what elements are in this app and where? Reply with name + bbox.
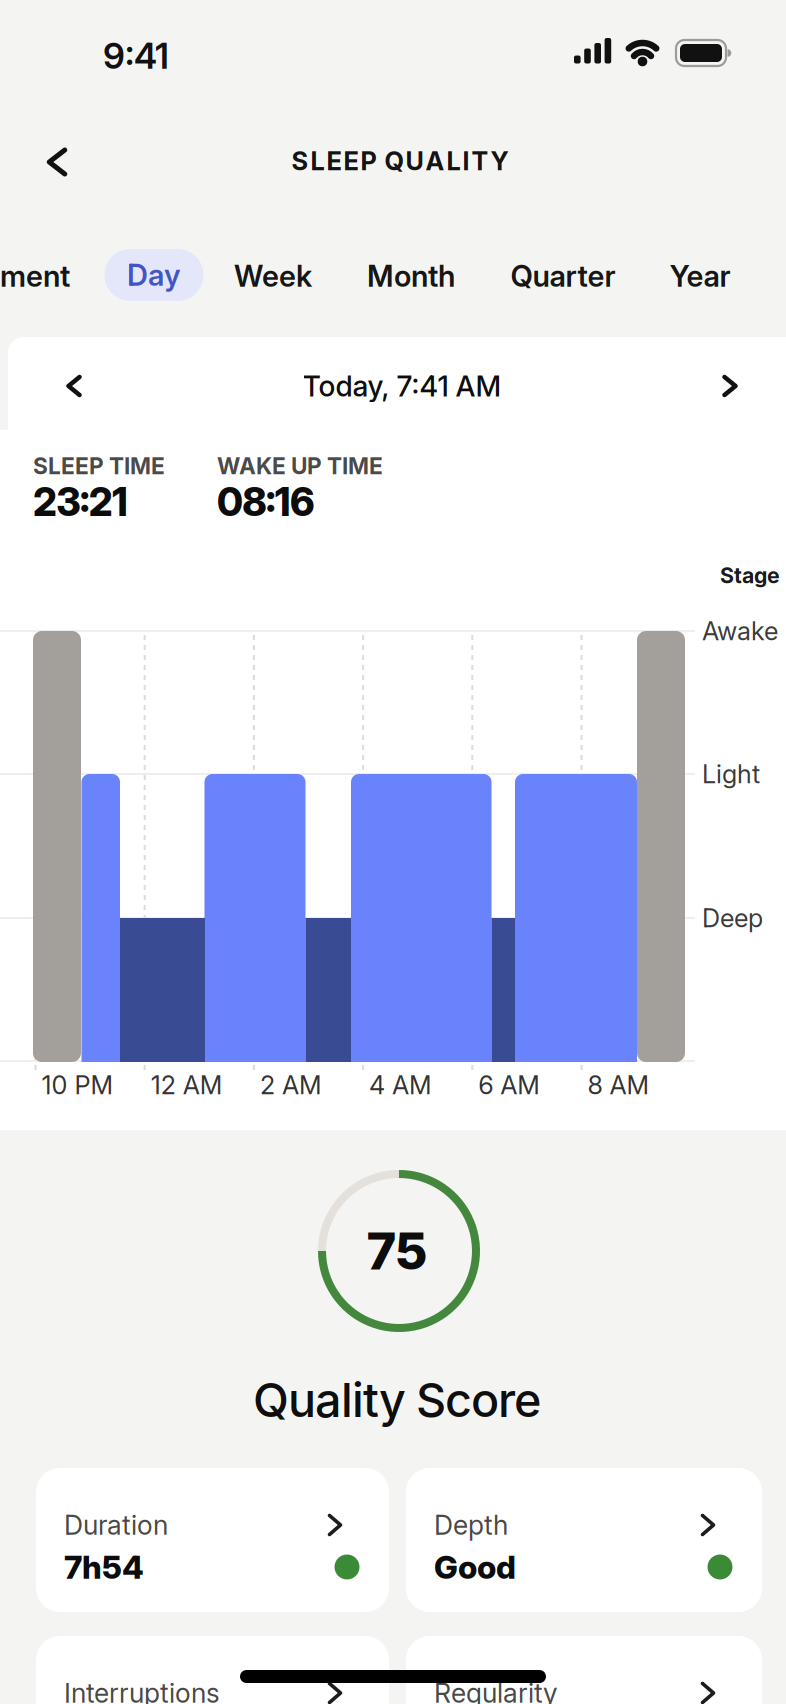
staticText: Month [367, 258, 455, 294]
button[interactable]: Interruptions [36, 1636, 389, 1704]
staticText: Depth [434, 1509, 508, 1541]
staticText: 2 AM [260, 1070, 322, 1100]
staticText: Deep [702, 903, 763, 933]
button[interactable]: Year [669, 250, 730, 302]
button[interactable]: Day [104, 249, 203, 301]
staticText: Duration [64, 1509, 168, 1541]
button[interactable]: Previous day [52, 364, 96, 408]
staticText: 4 AM [369, 1070, 432, 1100]
staticText: Today, 7:41 AM [302, 369, 501, 403]
staticText: Light [702, 759, 760, 789]
staticText: 08:16 [217, 479, 315, 525]
button[interactable]: Regularity [406, 1636, 762, 1704]
staticText: Awake [702, 616, 778, 646]
button[interactable]: Month [367, 250, 455, 302]
button[interactable]: Moment [0, 250, 120, 302]
staticText: 6 AM [478, 1070, 540, 1100]
staticText: Week [234, 258, 312, 294]
staticText: Day [127, 257, 181, 293]
staticText: WAKE UP TIME [217, 452, 383, 480]
staticText: Stage [720, 563, 780, 588]
staticText: S L E E P Q U A L I T Y [291, 146, 508, 176]
staticText: Regularity [434, 1677, 558, 1704]
staticText: 9:41 [103, 35, 169, 77]
staticText: 8 AM [587, 1070, 649, 1100]
staticText: ment [0, 258, 70, 294]
button[interactable]: Duration [36, 1468, 389, 1612]
staticText: Quarter [510, 258, 615, 294]
staticText: Good [434, 1548, 516, 1586]
staticText: 7h54 [64, 1548, 144, 1586]
button[interactable]: Next day [708, 364, 752, 408]
staticText: Interruptions [64, 1677, 220, 1704]
staticText: Year [669, 258, 730, 294]
staticText: 23:21 [33, 479, 128, 525]
staticText: SLEEP TIME [33, 452, 165, 480]
staticText: 12 AM [151, 1070, 223, 1100]
staticText: 75 [366, 1220, 427, 1282]
button[interactable]: Week [234, 250, 312, 302]
button[interactable]: Back [35, 140, 79, 184]
button[interactable]: Quarter [510, 250, 615, 302]
button[interactable]: Depth [406, 1468, 762, 1612]
staticText: Quality Score [253, 1372, 541, 1428]
staticText: 10 PM [41, 1070, 113, 1100]
